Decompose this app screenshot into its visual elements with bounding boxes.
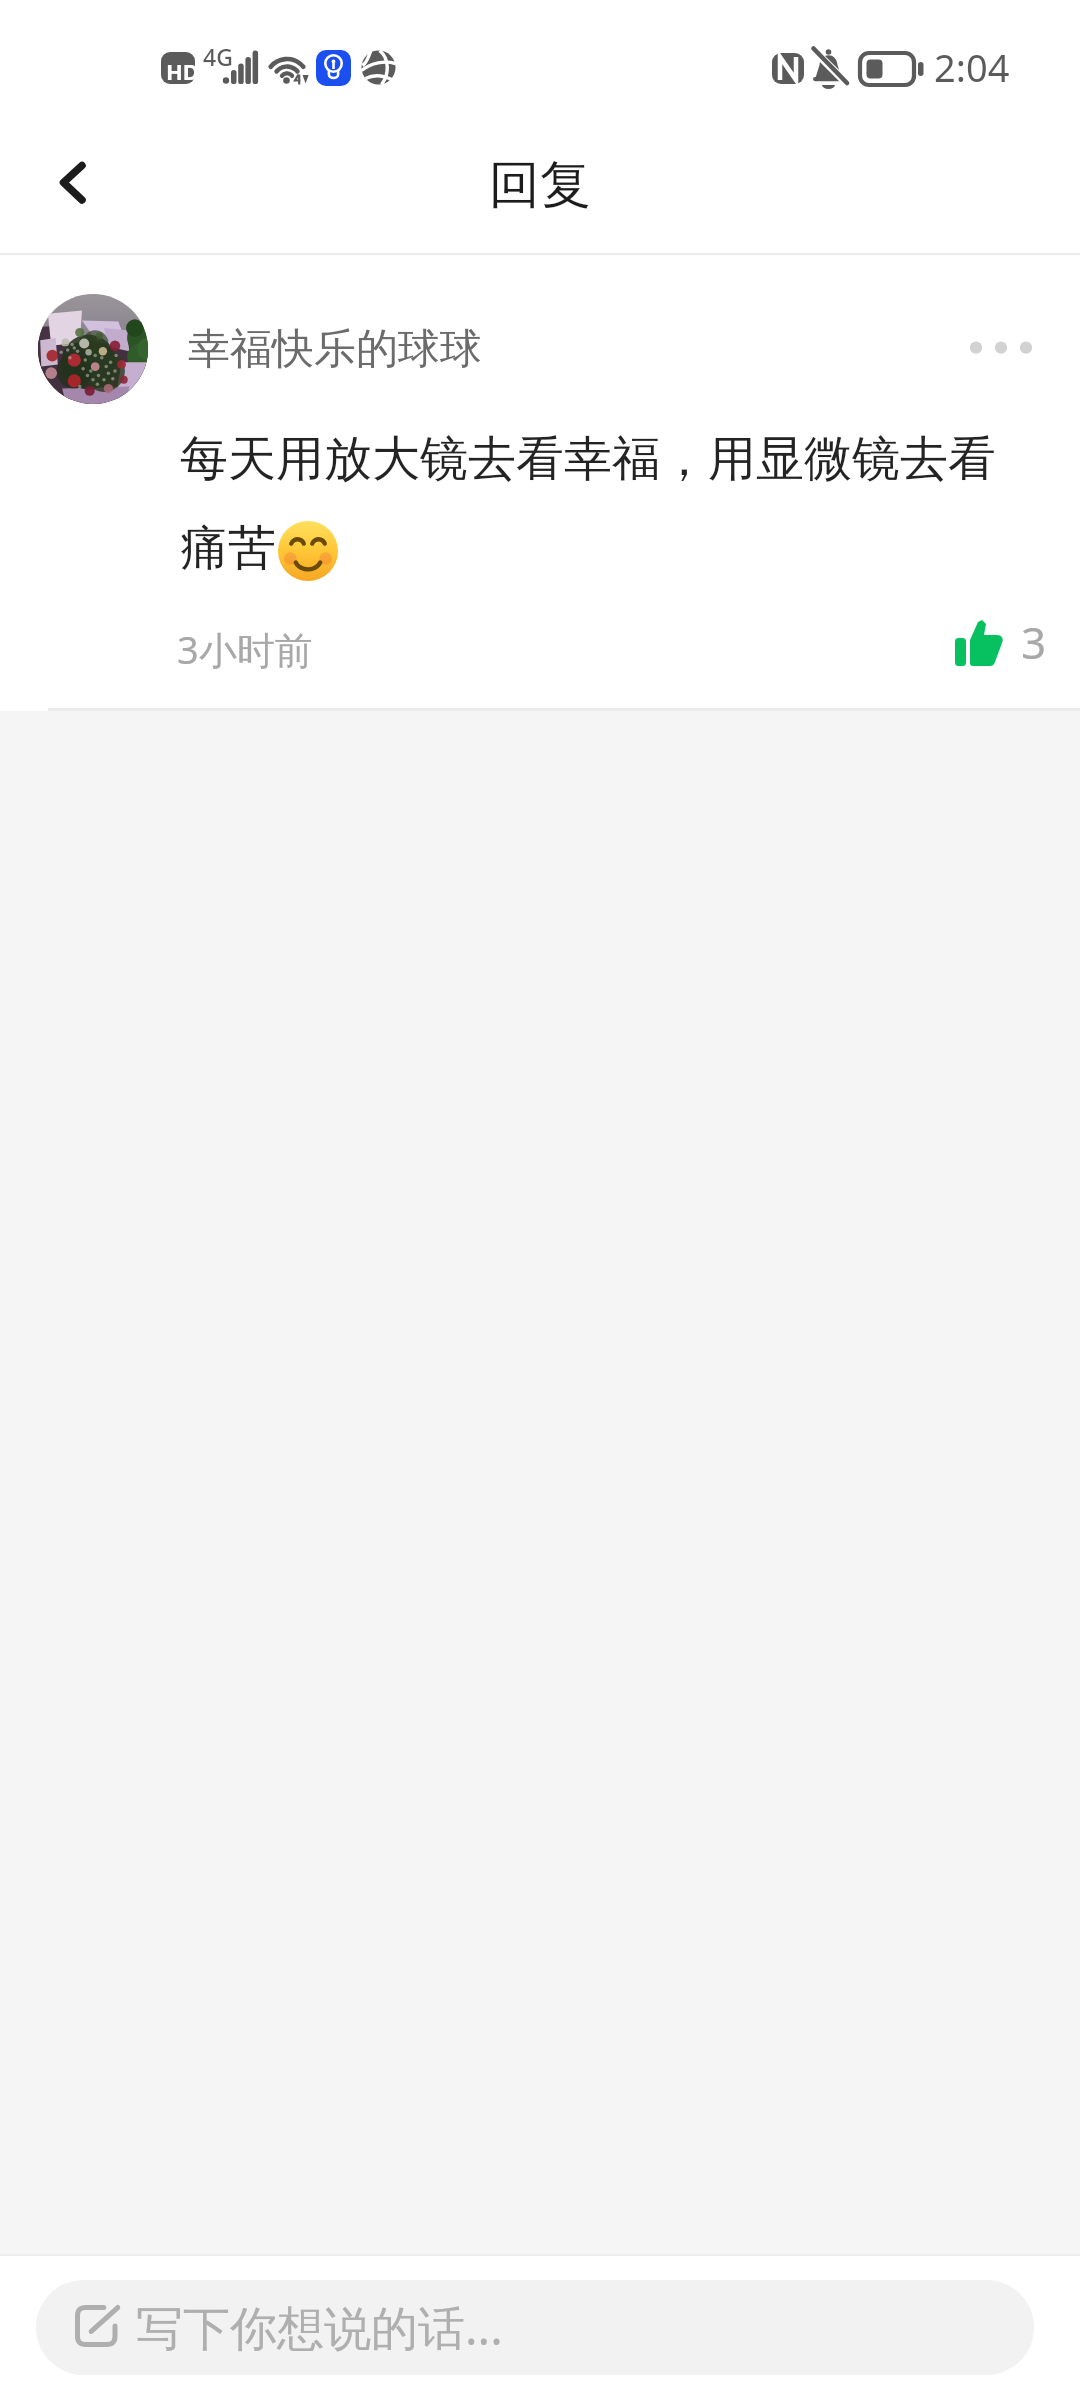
button[interactable]: More options: [952, 300, 1052, 396]
staticText: HD: [166, 56, 199, 86]
staticText: 幸福快乐的球球: [188, 323, 482, 376]
button[interactable]: Avatar: [38, 294, 148, 404]
button[interactable]: Like, 3: [940, 602, 1058, 682]
staticText: 回复: [0, 153, 1080, 217]
button[interactable]: Back: [11, 120, 131, 240]
staticText: 3小时前: [177, 623, 313, 675]
staticText: 4G: [203, 41, 233, 72]
staticText: 每天用放大镜去看幸福，用显微镜去看痛苦: [180, 429, 1010, 578]
button[interactable]: 写下你想说的话...: [36, 2280, 1034, 2375]
staticText: 2:04: [934, 41, 1010, 93]
staticText: 写下你想说的话...: [136, 2295, 503, 2359]
staticText: 3: [1021, 612, 1047, 672]
button[interactable]: 幸福快乐的球球: [178, 300, 508, 396]
